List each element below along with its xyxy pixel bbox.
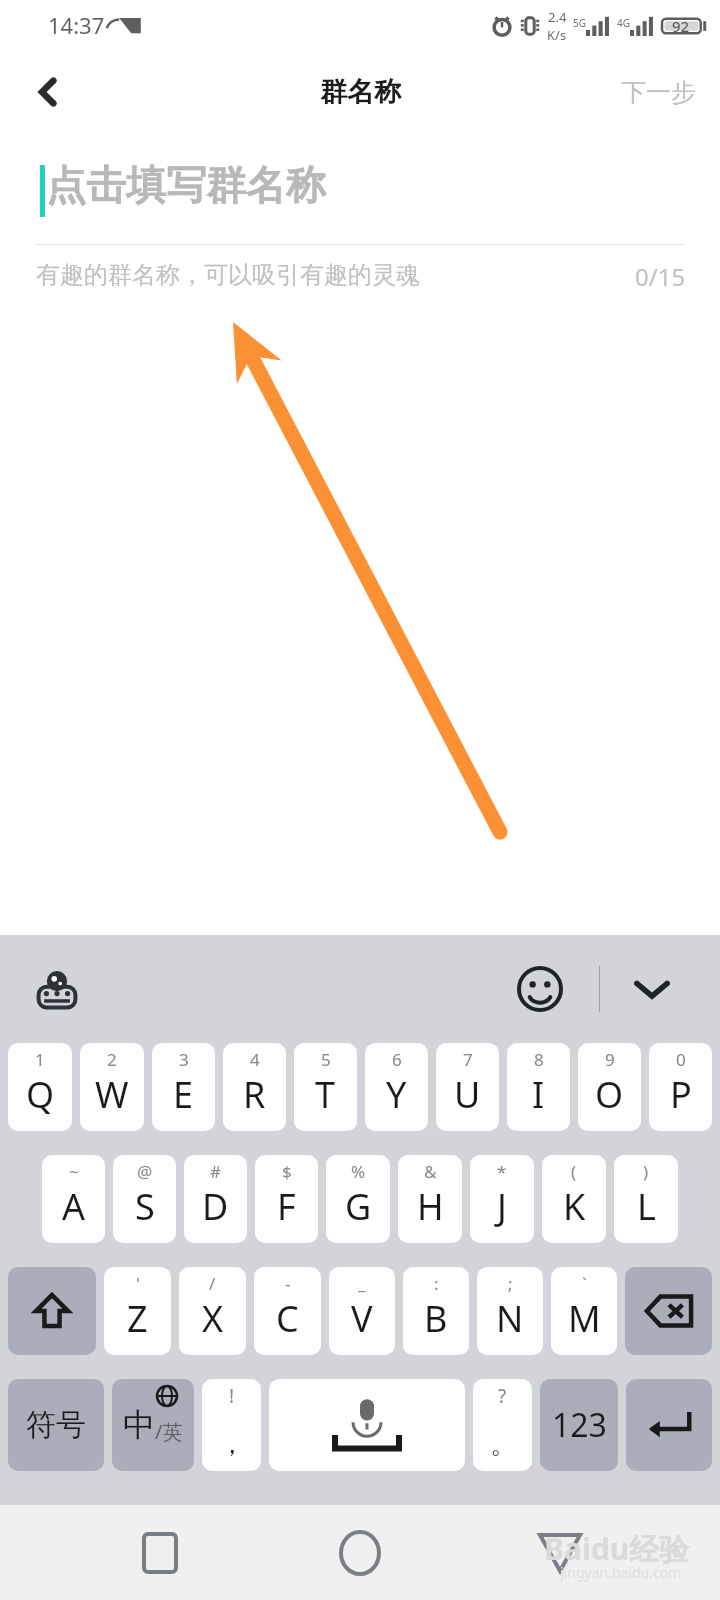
staticText: % — [351, 1160, 366, 1183]
button[interactable]: - — [254, 1267, 321, 1355]
button[interactable]: 切换输入语言 — [22, 954, 92, 1024]
staticText: 1 — [35, 1048, 45, 1071]
button[interactable]: @ — [113, 1155, 176, 1243]
button[interactable]: 收起键盘 — [620, 957, 684, 1021]
staticText: 4 — [250, 1048, 260, 1071]
staticText: ， — [219, 1428, 245, 1461]
staticText: H — [417, 1182, 444, 1231]
staticText: F — [277, 1182, 296, 1231]
button[interactable]: ; — [477, 1267, 543, 1355]
button[interactable]: 5 — [294, 1043, 357, 1131]
staticText: D — [202, 1182, 229, 1231]
staticText: 6 — [392, 1048, 402, 1071]
button[interactable]: ! — [202, 1379, 261, 1471]
staticText: Y — [386, 1070, 407, 1119]
button[interactable]: 1 — [8, 1043, 72, 1131]
staticText: / — [209, 1272, 216, 1295]
staticText: @ — [137, 1160, 153, 1183]
staticText: A — [62, 1182, 86, 1231]
button[interactable]: : — [403, 1267, 469, 1355]
staticText: T — [315, 1070, 336, 1119]
button[interactable]: # — [184, 1155, 247, 1243]
button[interactable]: 4 — [223, 1043, 286, 1131]
button[interactable]: & — [398, 1155, 462, 1243]
staticText: P — [670, 1070, 692, 1119]
button[interactable]: Shift — [8, 1267, 96, 1355]
button[interactable]: 下一步 — [615, 69, 702, 116]
button[interactable]: 删除 — [625, 1267, 712, 1355]
button[interactable]: 最近任务 — [120, 1513, 200, 1593]
staticText: ' — [136, 1272, 140, 1295]
button[interactable]: $ — [255, 1155, 318, 1243]
staticText: R — [243, 1070, 266, 1119]
staticText: 8 — [534, 1048, 544, 1071]
button[interactable]: 123 — [540, 1379, 618, 1471]
button[interactable]: * — [470, 1155, 534, 1243]
button[interactable]: 6 — [365, 1043, 428, 1131]
staticText: X — [202, 1294, 224, 1343]
button[interactable]: ~ — [42, 1155, 105, 1243]
button[interactable]: 返回 — [520, 1513, 600, 1593]
button[interactable]: 3 — [152, 1043, 215, 1131]
staticText: 有趣的群名称，可以吸引有趣的灵魂 — [36, 260, 420, 290]
staticText: 123 — [552, 1403, 607, 1447]
staticText: E — [173, 1070, 194, 1119]
button[interactable]: ` — [551, 1267, 617, 1355]
button[interactable]: 回车 — [626, 1379, 712, 1471]
staticText: & — [424, 1160, 437, 1183]
staticText: 。 — [490, 1428, 516, 1461]
staticText: : — [434, 1272, 439, 1295]
staticText: ) — [643, 1160, 649, 1183]
staticText: ! — [229, 1383, 235, 1409]
button[interactable]: ? — [473, 1379, 532, 1471]
staticText: B — [424, 1294, 448, 1343]
staticText: 2.4 — [548, 8, 567, 26]
staticText: /英 — [155, 1418, 183, 1445]
staticText: K/s — [547, 26, 567, 44]
staticText: $ — [282, 1160, 292, 1183]
button[interactable]: 9 — [578, 1043, 641, 1131]
button[interactable]: 空格 — [269, 1379, 465, 1471]
staticText: J — [497, 1182, 507, 1231]
button[interactable]: 0 — [649, 1043, 712, 1131]
staticText: 0/15 — [635, 260, 686, 293]
button[interactable]: 符号 — [8, 1379, 104, 1471]
staticText: G — [345, 1182, 372, 1231]
staticText: K — [563, 1182, 586, 1231]
button[interactable]: 中 — [112, 1379, 194, 1471]
button[interactable]: ( — [542, 1155, 606, 1243]
staticText: N — [496, 1294, 524, 1343]
button[interactable]: 2 — [80, 1043, 144, 1131]
button[interactable]: 表情 — [508, 957, 572, 1021]
staticText: ` — [582, 1272, 587, 1295]
staticText: 2 — [107, 1048, 117, 1071]
staticText: 中 — [123, 1405, 155, 1445]
staticText: 5 — [321, 1048, 331, 1071]
staticText: C — [276, 1294, 299, 1343]
button[interactable]: ) — [614, 1155, 678, 1243]
staticText: 符号 — [26, 1406, 86, 1444]
button[interactable]: 7 — [436, 1043, 499, 1131]
button[interactable]: _ — [329, 1267, 395, 1355]
staticText: I — [532, 1070, 545, 1119]
staticText: _ — [358, 1272, 366, 1295]
button[interactable]: 返回 — [20, 64, 76, 120]
staticText: 群名称 — [320, 75, 401, 109]
staticText: ; — [508, 1272, 513, 1295]
button[interactable]: / — [179, 1267, 246, 1355]
button[interactable]: ' — [104, 1267, 171, 1355]
staticText: jingyan.baidu.com — [560, 1563, 682, 1582]
staticText: ~ — [69, 1160, 79, 1183]
staticText: M — [568, 1294, 601, 1343]
staticText: # — [210, 1160, 221, 1183]
staticText: 0 — [676, 1048, 686, 1071]
button[interactable]: 主页 — [320, 1513, 400, 1593]
staticText: 9 — [605, 1048, 615, 1071]
button[interactable]: 点击填写群名称 — [46, 160, 326, 210]
staticText: 下一步 — [621, 77, 696, 108]
staticText: 3 — [179, 1048, 189, 1071]
staticText: 5G — [573, 16, 586, 30]
button[interactable]: % — [326, 1155, 390, 1243]
button[interactable]: 8 — [507, 1043, 570, 1131]
staticText: ? — [498, 1383, 507, 1409]
